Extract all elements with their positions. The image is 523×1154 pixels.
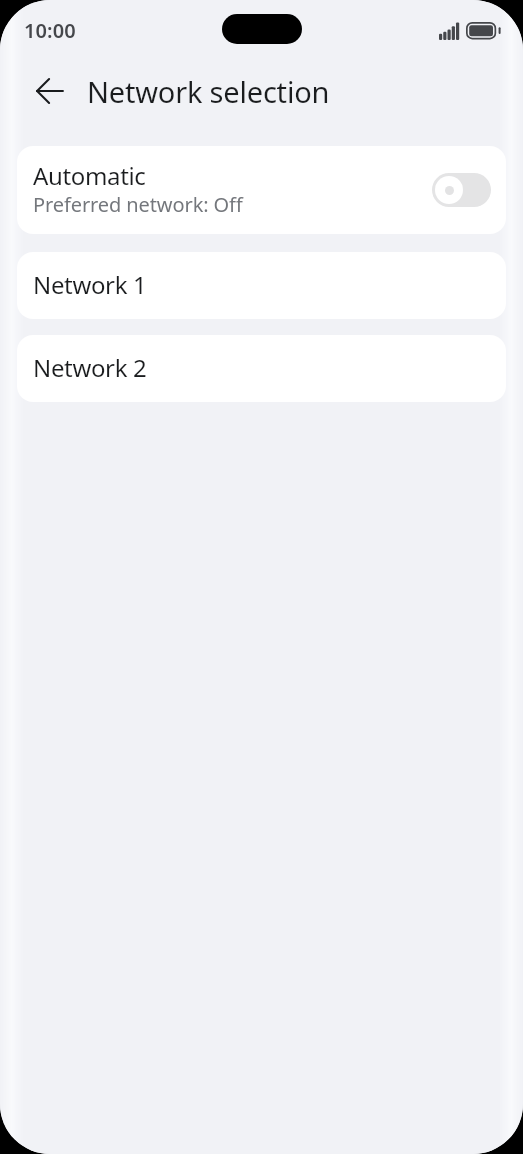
staticText: Automatic (33, 159, 146, 192)
staticText: Network 1 (33, 268, 147, 301)
staticText: Network 2 (33, 351, 147, 384)
staticText: Network selection (87, 72, 330, 111)
button[interactable]: Back (22, 63, 78, 119)
button[interactable]: Preferred network toggle (432, 173, 491, 207)
staticText: Preferred network: Off (33, 191, 243, 218)
button[interactable]: Network 1 (17, 252, 506, 319)
staticText: 10:00 (24, 17, 76, 44)
button[interactable]: Network 2 (17, 335, 506, 402)
button[interactable]: Automatic (17, 146, 506, 234)
